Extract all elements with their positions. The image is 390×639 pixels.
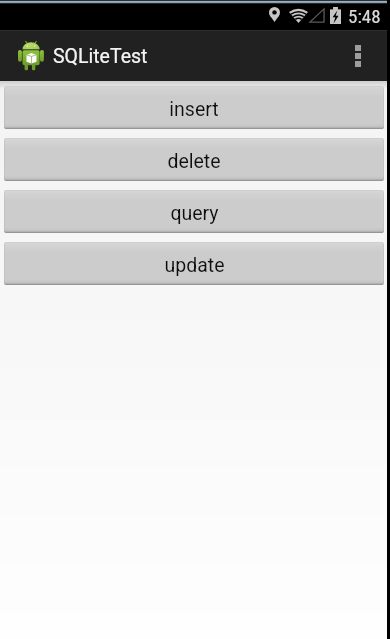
- button[interactable]: query: [4, 190, 384, 233]
- button[interactable]: update: [4, 242, 384, 285]
- button[interactable]: insert: [4, 86, 384, 129]
- button[interactable]: More options: [336, 30, 380, 81]
- staticText: insert: [169, 98, 219, 121]
- staticText: delete: [167, 150, 221, 173]
- staticText: SQLiteTest: [53, 45, 148, 68]
- button[interactable]: delete: [4, 138, 384, 181]
- staticText: query: [170, 202, 219, 225]
- staticText: update: [164, 254, 225, 277]
- staticText: 5:48: [348, 5, 381, 27]
